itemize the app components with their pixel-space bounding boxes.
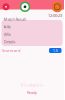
button[interactable]: Football [20,2,30,12]
button[interactable]: Basketball [52,1,63,12]
staticText: Alfa [3,24,10,29]
staticText: Ready [27,90,37,95]
button[interactable]: Profile [2,3,9,10]
staticText: It is what it is [21,82,43,88]
staticText: Match Result [3,17,25,22]
staticText: Details [3,39,15,44]
staticText: Villa [3,32,10,37]
staticText: 12:00:23 [48,13,62,18]
staticText: Scorecard [2,48,20,53]
button[interactable]: 1.5 [49,48,61,53]
staticText: 1.5 [53,48,58,53]
